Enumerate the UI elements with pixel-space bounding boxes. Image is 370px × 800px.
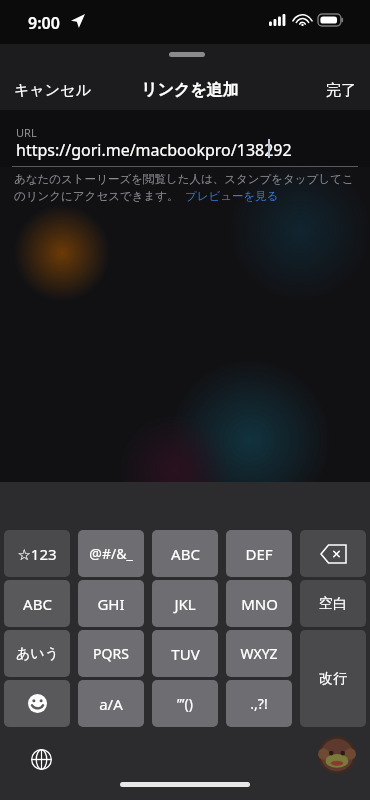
button[interactable]: キャンセル — [12, 79, 93, 102]
staticText: 9:00 — [28, 12, 60, 34]
button[interactable]: https://gori.me/macbookpro/138292 — [16, 139, 292, 161]
staticText: PQRS — [93, 644, 129, 663]
staticText: DEF — [245, 544, 273, 564]
button[interactable]: プレビューを見る — [185, 189, 279, 203]
button[interactable]: Sticker — [318, 736, 356, 774]
button[interactable]: MNO — [226, 580, 292, 627]
button[interactable]: JKL — [152, 580, 218, 627]
button[interactable]: 空白 — [300, 580, 366, 627]
staticText: 完了 — [326, 81, 356, 100]
button[interactable]: DEF — [226, 530, 292, 577]
staticText: JKL — [174, 594, 196, 614]
button[interactable]: Change keyboard — [26, 744, 56, 774]
staticText: ’”() — [177, 694, 193, 713]
staticText: TUV — [171, 644, 200, 664]
staticText: 空白 — [319, 595, 347, 613]
button[interactable]: ABC — [4, 580, 70, 627]
staticText: あいう — [16, 645, 59, 663]
staticText: 改行 — [319, 670, 347, 688]
button[interactable]: あいう — [4, 630, 70, 677]
staticText: .,?! — [250, 694, 268, 713]
button[interactable]: ABC — [152, 530, 218, 577]
button[interactable]: 完了 — [324, 79, 358, 102]
button[interactable]: WXYZ — [226, 630, 292, 677]
button[interactable]: 改行 — [300, 630, 366, 727]
button[interactable]: GHI — [78, 580, 144, 627]
button[interactable]: ’”() — [152, 680, 218, 727]
button[interactable]: TUV — [152, 630, 218, 677]
staticText: ☆123 — [17, 544, 57, 564]
button[interactable]: Emoji — [4, 680, 70, 727]
button[interactable]: ☆123 — [4, 530, 70, 577]
button[interactable]: a/A — [78, 680, 144, 727]
staticText: MNO — [241, 594, 278, 614]
staticText: プレビューを見る — [185, 189, 279, 203]
staticText: のリンクにアクセスできます。 — [14, 189, 179, 203]
staticText: リンクを追加 — [141, 80, 239, 100]
staticText: @#/&_ — [89, 544, 133, 563]
staticText: ABC — [23, 594, 52, 614]
staticText: ABC — [171, 544, 200, 564]
staticText: GHI — [97, 594, 125, 614]
staticText: URL — [16, 125, 37, 140]
button[interactable]: Delete — [300, 530, 366, 577]
staticText: WXYZ — [240, 644, 278, 663]
staticText: https://gori.me/macbookpro/138292 — [16, 139, 292, 161]
button[interactable]: PQRS — [78, 630, 144, 677]
button[interactable]: .,?! — [226, 680, 292, 727]
button[interactable]: @#/&_ — [78, 530, 144, 577]
staticText: キャンセル — [14, 81, 91, 100]
staticText: あなたのストーリーズを閲覧した人は、スタンプをタップしてこ — [14, 172, 354, 186]
staticText: a/A — [99, 694, 123, 714]
